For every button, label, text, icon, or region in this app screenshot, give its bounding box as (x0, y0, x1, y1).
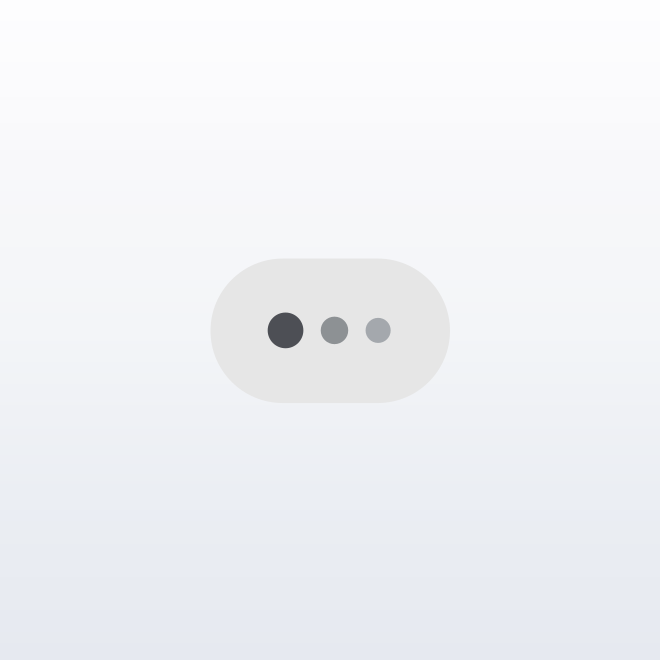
button[interactable]: Typing indicator (210, 259, 450, 403)
